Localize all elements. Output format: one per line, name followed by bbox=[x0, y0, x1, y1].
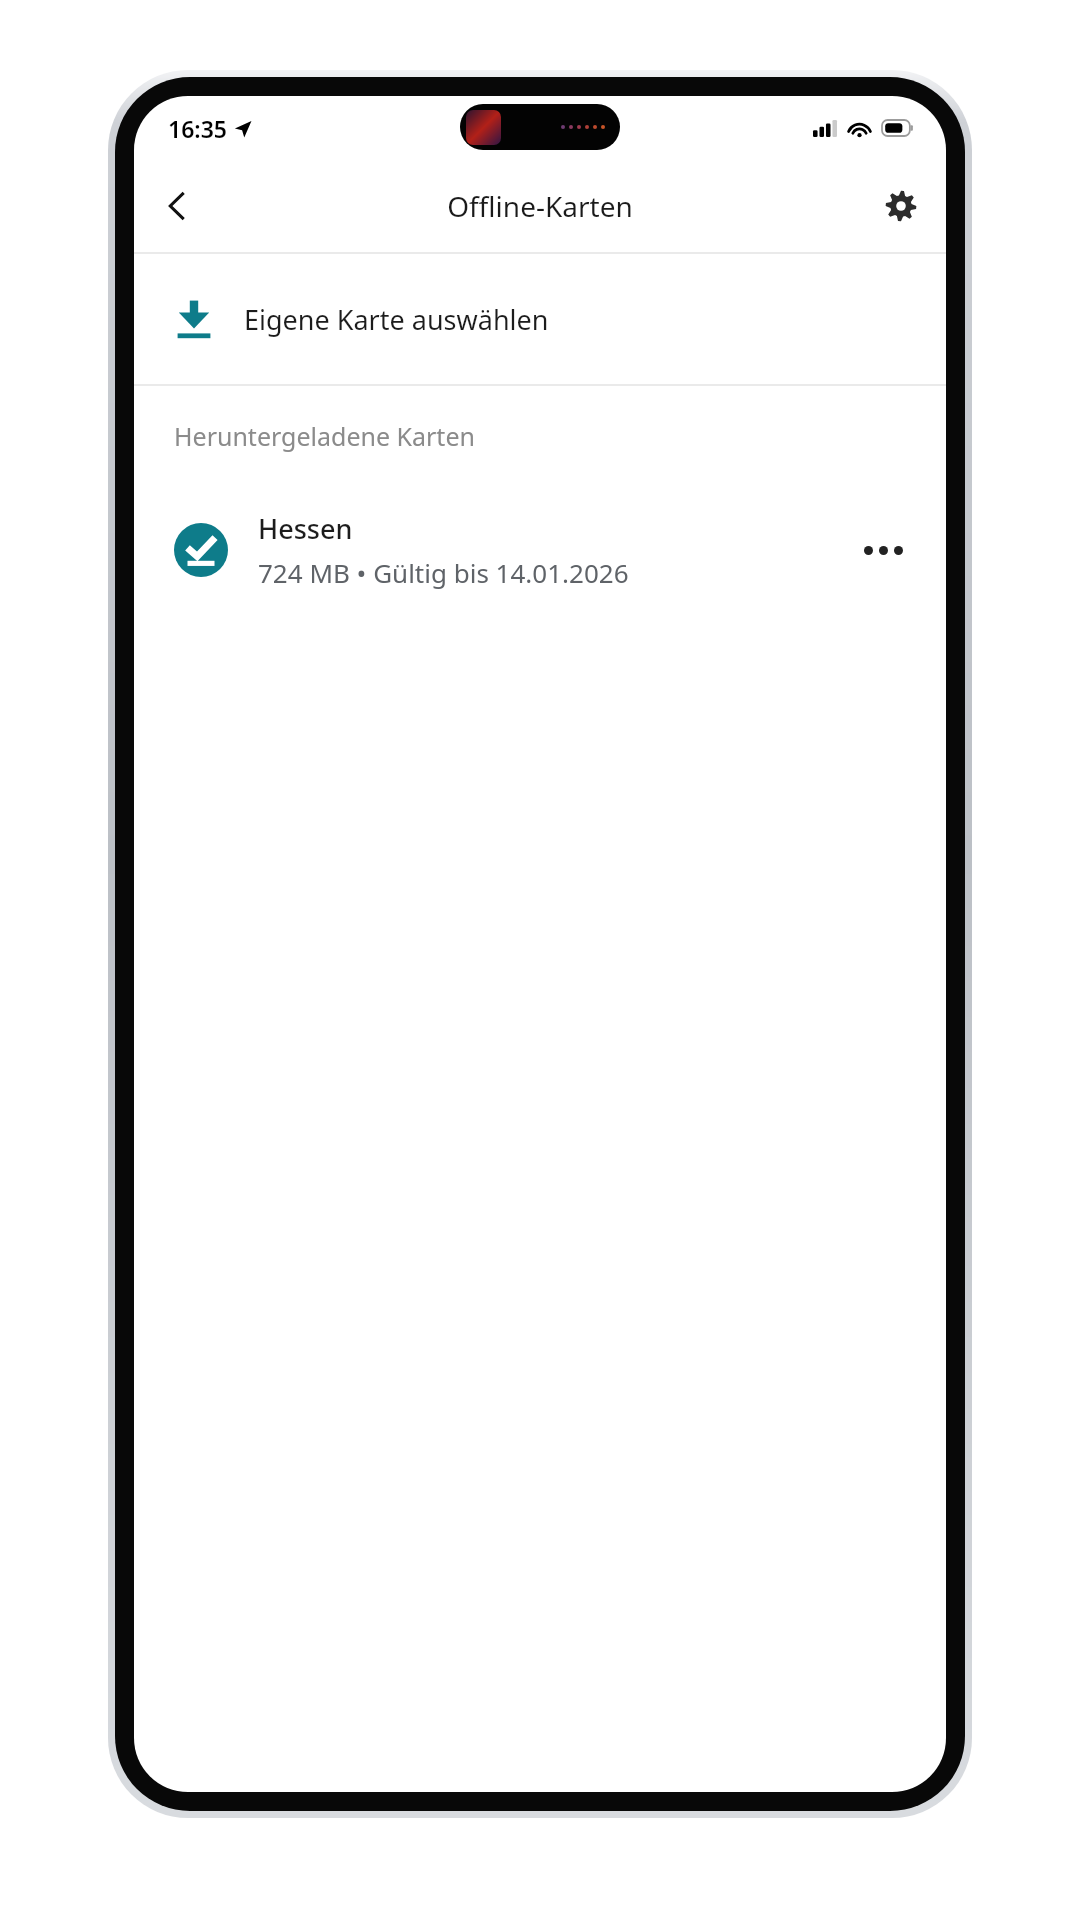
staticText: Eigene Karte auswählen bbox=[244, 301, 549, 338]
button[interactable]: Zurück bbox=[144, 173, 210, 239]
staticText: 16:35 bbox=[168, 113, 227, 144]
button[interactable]: Einstellungen bbox=[868, 173, 934, 239]
staticText: Heruntergeladene Karten bbox=[174, 419, 475, 453]
button[interactable]: Hessen bbox=[134, 486, 946, 614]
staticText: Hessen bbox=[258, 510, 353, 547]
staticText: 724 MB • Gültig bis 14.01.2026 bbox=[258, 555, 629, 590]
staticText: Offline-Karten bbox=[447, 187, 633, 225]
button[interactable]: Eigene Karte auswählen bbox=[134, 254, 946, 384]
button[interactable]: Weitere Optionen bbox=[852, 519, 914, 581]
